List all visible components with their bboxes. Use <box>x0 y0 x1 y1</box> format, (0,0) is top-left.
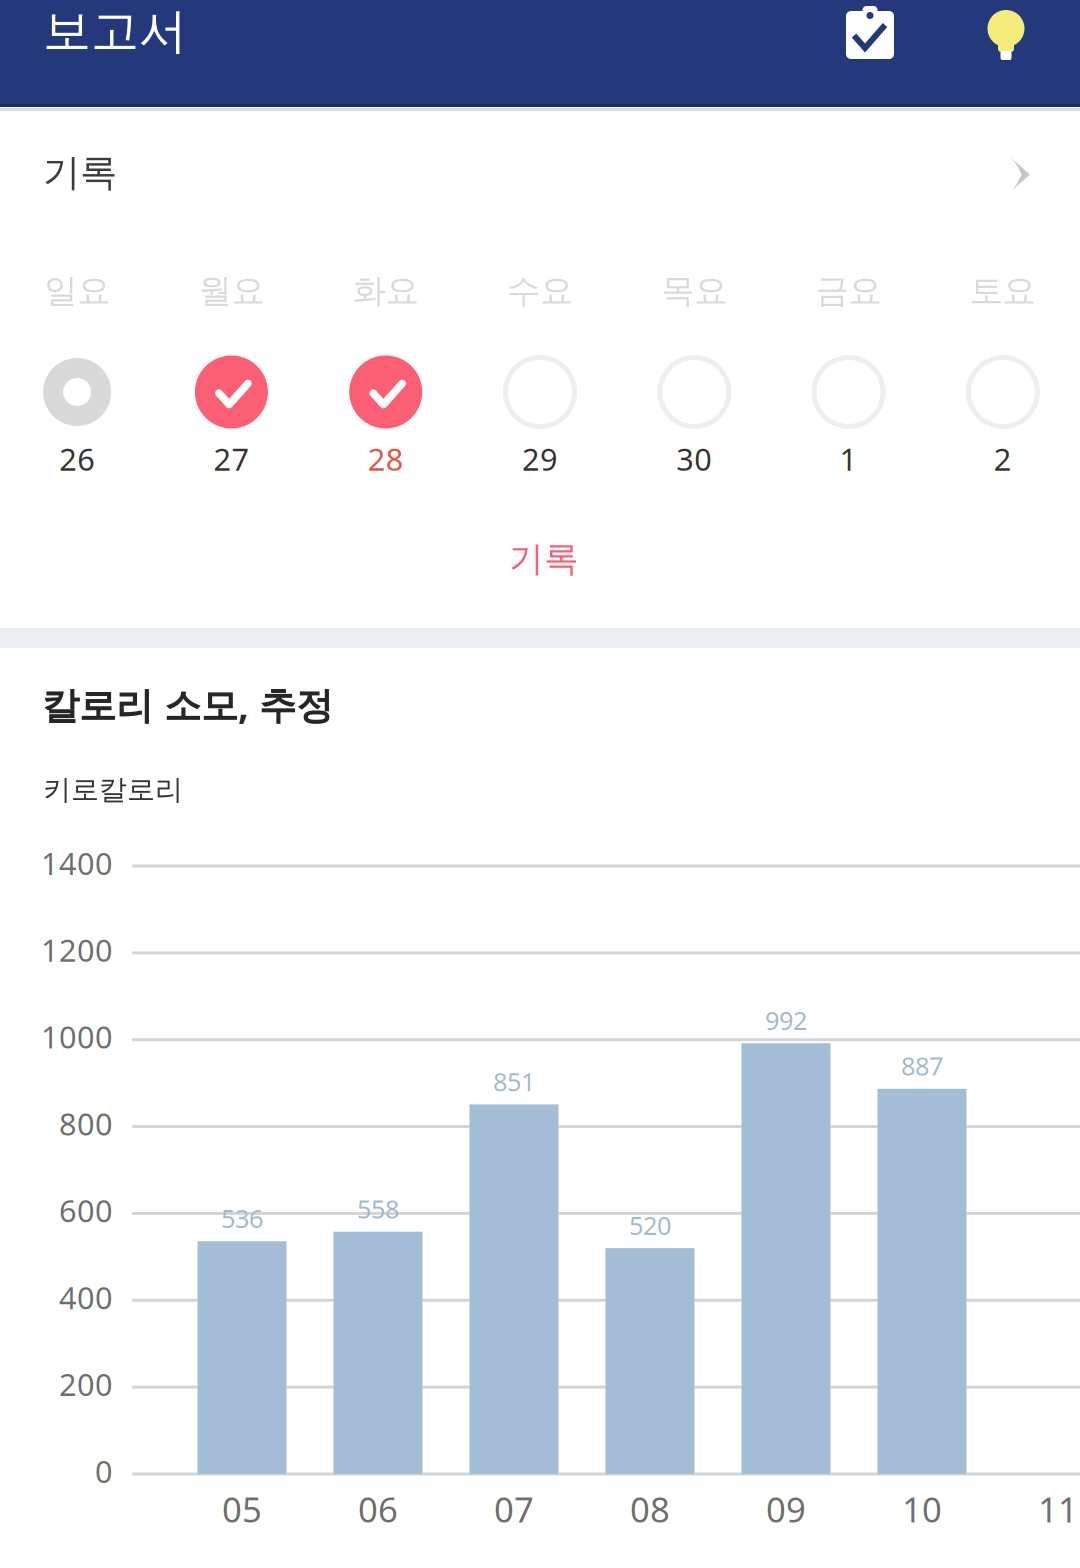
staticText: 월요 <box>198 270 264 312</box>
staticText: 992 <box>765 1003 807 1037</box>
staticText: 기록 <box>43 149 117 196</box>
button[interactable]: 정보 <box>966 0 1046 79</box>
staticText: 토요 <box>970 270 1036 312</box>
staticText: 200 <box>59 1363 113 1405</box>
staticText: 1200 <box>41 929 113 971</box>
button[interactable]: 기록 <box>0 115 1080 231</box>
staticText: 화요 <box>353 270 419 312</box>
staticText: 06 <box>358 1485 398 1533</box>
staticText: 보고서 <box>43 1 187 61</box>
staticText: 수요 <box>507 270 573 312</box>
staticText: 09 <box>766 1485 806 1533</box>
button[interactable]: 기록 <box>830 2 910 82</box>
staticText: 1400 <box>41 842 113 884</box>
staticText: 금요 <box>816 270 882 312</box>
staticText: 1000 <box>41 1016 113 1058</box>
button[interactable]: 일요 <box>0 270 154 520</box>
button[interactable]: 기록 <box>424 517 664 601</box>
staticText: 536 <box>221 1201 263 1235</box>
staticText: 30 <box>676 438 712 480</box>
staticText: 887 <box>901 1048 943 1083</box>
staticText: 11 <box>1038 1485 1078 1533</box>
staticText: 10 <box>902 1485 942 1533</box>
button[interactable]: 목요 <box>617 270 771 520</box>
staticText: 0 <box>95 1450 113 1492</box>
staticText: 기록 <box>509 537 579 581</box>
staticText: 800 <box>59 1103 113 1144</box>
staticText: 520 <box>629 1208 671 1242</box>
staticText: 29 <box>522 438 558 480</box>
button[interactable]: 토요 <box>926 270 1080 520</box>
staticText: 05 <box>222 1485 262 1533</box>
staticText: 28 <box>368 438 404 480</box>
staticText: 26 <box>59 438 95 480</box>
button[interactable]: 금요 <box>771 270 926 520</box>
button[interactable]: 화요 <box>309 270 463 520</box>
staticText: 27 <box>213 438 249 480</box>
staticText: 07 <box>494 1485 534 1533</box>
staticText: 목요 <box>661 270 727 312</box>
button[interactable]: 수요 <box>463 270 617 520</box>
staticText: 1 <box>840 438 858 480</box>
staticText: 칼로리 소모, 추정 <box>42 679 333 730</box>
staticText: 851 <box>493 1064 535 1099</box>
button[interactable]: 월요 <box>154 270 309 520</box>
staticText: 08 <box>630 1485 670 1533</box>
staticText: 558 <box>357 1191 399 1226</box>
staticText: 키로칼로리 <box>43 772 183 807</box>
staticText: 2 <box>994 438 1012 480</box>
staticText: 400 <box>59 1276 113 1318</box>
staticText: 600 <box>59 1189 113 1231</box>
staticText: 일요 <box>44 270 110 312</box>
